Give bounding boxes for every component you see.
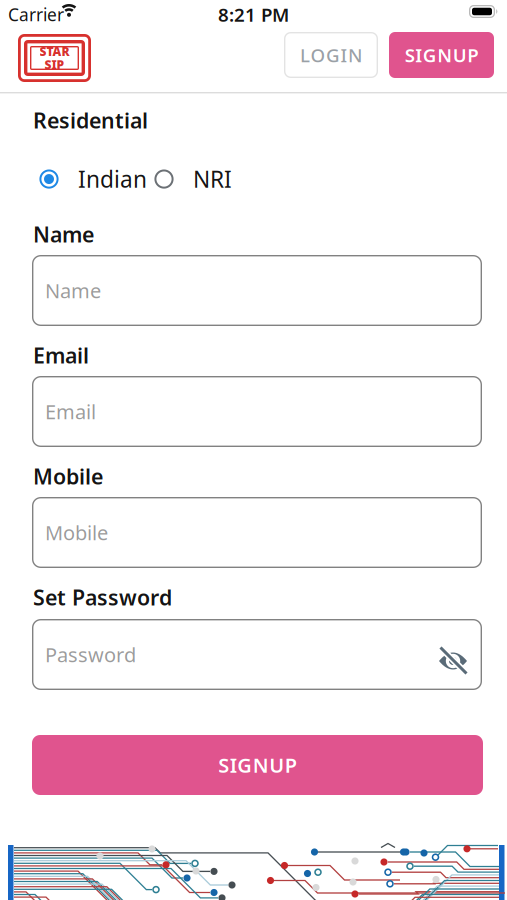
staticText: Set Password — [33, 583, 172, 611]
staticText: SIGNUP — [218, 752, 297, 778]
staticText: NRI — [193, 164, 232, 194]
staticText: STAR — [39, 43, 69, 59]
button[interactable]: Indian — [39, 164, 147, 194]
button[interactable]: SIGNUP — [32, 735, 483, 795]
staticText: 8:21 PM — [218, 2, 289, 27]
staticText: Name — [45, 277, 101, 304]
staticText: Email — [33, 341, 89, 369]
staticText: Name — [33, 220, 94, 248]
button[interactable]: SIGNUP — [389, 32, 494, 78]
staticText: Residential — [33, 106, 148, 134]
button[interactable]: LOGIN — [284, 32, 378, 78]
staticText: Email — [45, 398, 96, 425]
button[interactable]: NRI — [154, 164, 232, 194]
button[interactable]: Show password — [433, 641, 473, 681]
staticText: Carrier — [8, 3, 64, 26]
staticText: SIP — [44, 57, 64, 73]
staticText: SIGNUP — [405, 43, 478, 67]
staticText: Password — [45, 641, 136, 668]
staticText: Indian — [78, 164, 147, 194]
staticText: LOGIN — [300, 43, 362, 67]
staticText: Mobile — [45, 519, 108, 546]
staticText: Mobile — [33, 462, 103, 490]
